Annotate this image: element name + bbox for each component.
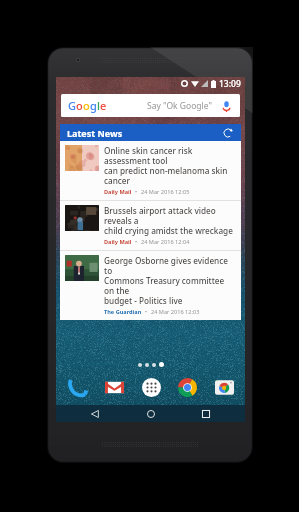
staticText: l xyxy=(97,98,100,113)
button[interactable]: Home xyxy=(134,405,168,422)
staticText: Daily Mail xyxy=(104,238,132,246)
staticText: The Guardian xyxy=(104,308,142,316)
button[interactable]: Back xyxy=(78,405,112,422)
staticText: • xyxy=(135,238,138,246)
staticText: o xyxy=(83,98,90,113)
staticText: g xyxy=(90,98,97,113)
staticText: Say "Ok Google" xyxy=(147,100,212,112)
staticText: • xyxy=(145,308,148,316)
button[interactable]: Camera xyxy=(212,375,236,399)
staticText: Daily Mail xyxy=(104,188,132,196)
button[interactable]: Recents xyxy=(189,405,223,422)
button[interactable]: G xyxy=(61,94,240,117)
button[interactable]: George Osborne gives evidence to Commons… xyxy=(60,251,241,320)
button[interactable]: Chrome xyxy=(175,375,199,399)
staticText: • xyxy=(135,188,138,196)
staticText: 13:09 xyxy=(219,78,241,90)
staticText: G xyxy=(68,98,76,113)
button[interactable]: Gmail xyxy=(102,375,126,399)
staticText: 24 Mar 2016 12:05 xyxy=(141,188,190,196)
staticText: o xyxy=(76,98,83,113)
staticText: 24 Mar 2016 12:03 xyxy=(151,308,200,316)
button[interactable]: Online skin cancer risk assessment tool … xyxy=(60,141,241,200)
staticText: George Osborne gives evidence to Commons… xyxy=(104,255,236,306)
staticText: Latest News xyxy=(67,127,123,139)
staticText: Online skin cancer risk assessment tool … xyxy=(104,145,236,186)
button[interactable]: Brussels airport attack video reveals a … xyxy=(60,201,241,250)
button[interactable]: All apps xyxy=(139,375,163,399)
button[interactable]: Latest News xyxy=(60,124,241,141)
button[interactable]: Voice search xyxy=(219,99,233,113)
button[interactable]: Phone xyxy=(65,375,89,399)
staticText: Brussels airport attack video reveals a … xyxy=(104,205,236,236)
staticText: 24 Mar 2016 12:04 xyxy=(141,238,190,246)
staticText: e xyxy=(100,98,107,113)
button[interactable]: Refresh xyxy=(222,127,234,139)
